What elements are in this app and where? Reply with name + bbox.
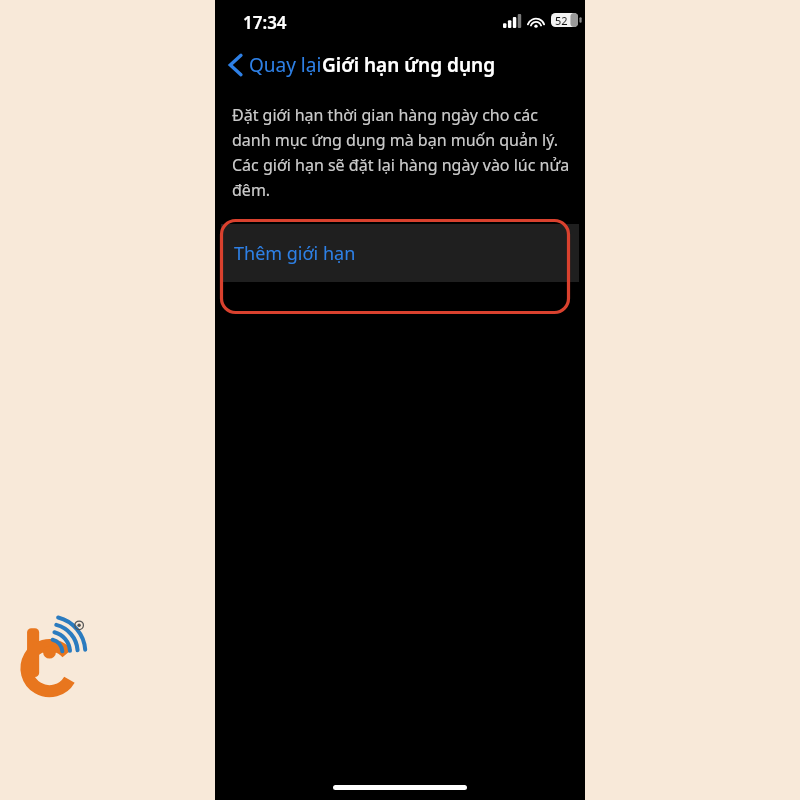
button[interactable]: Thêm giới hạn [221,224,579,282]
staticText: 17:34 [243,11,287,34]
staticText: 52 [555,13,568,28]
staticText: Đặt giới hạn thời gian hàng ngày cho các… [232,104,572,200]
staticText: Quay lại [249,52,322,78]
button[interactable]: Quay lại [223,44,328,86]
staticText: Giới hạn ứng dụng [322,52,496,78]
staticText: Thêm giới hạn [234,241,356,266]
